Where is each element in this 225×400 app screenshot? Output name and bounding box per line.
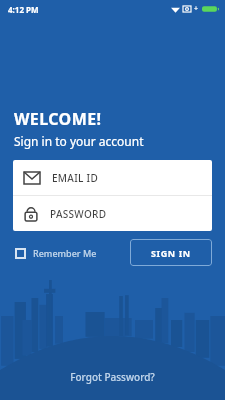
button[interactable]: PASSWORD xyxy=(13,196,212,231)
button[interactable]: Forgot Password? xyxy=(60,366,165,388)
staticText: EMAIL ID xyxy=(52,171,99,185)
staticText: 4:12 PM xyxy=(8,4,39,15)
staticText: WELCOME! xyxy=(14,108,102,130)
staticText: + xyxy=(194,4,199,14)
staticText: Forgot Password? xyxy=(70,370,155,384)
button[interactable]: EMAIL ID xyxy=(13,160,212,195)
staticText: Sign in to your account xyxy=(14,133,144,149)
staticText: SIGN IN xyxy=(151,247,191,259)
staticText: PASSWORD xyxy=(50,207,107,221)
button[interactable]: Remember Me xyxy=(13,242,99,264)
staticText: Remember Me xyxy=(33,247,97,259)
button[interactable]: SIGN IN xyxy=(130,239,212,266)
